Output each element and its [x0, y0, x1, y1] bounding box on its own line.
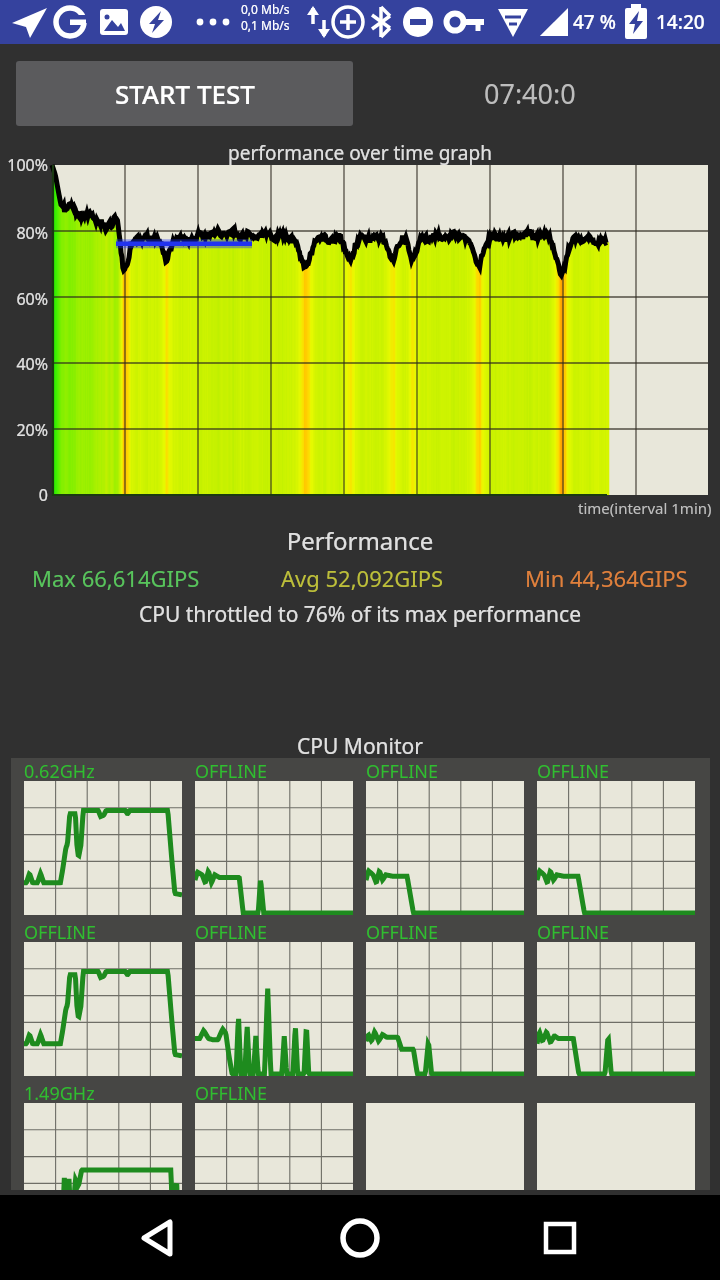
staticText: Performance: [0, 524, 720, 557]
staticText: OFFLINE: [537, 920, 609, 945]
staticText: 40%: [0, 353, 48, 375]
staticText: Min 44,364GIPS: [525, 563, 688, 593]
staticText: OFFLINE: [366, 920, 438, 945]
button[interactable]: START TEST: [16, 61, 353, 126]
staticText: CPU Monitor: [0, 732, 720, 761]
staticText: 100%: [0, 154, 48, 176]
staticText: performance over time graph: [0, 140, 720, 166]
staticText: 14:20: [656, 9, 705, 35]
staticText: 0: [0, 484, 48, 506]
staticText: OFFLINE: [537, 759, 609, 784]
staticText: 0,1 Mb/s: [241, 17, 290, 33]
staticText: Avg 52,092GIPS: [281, 563, 444, 593]
staticText: OFFLINE: [195, 759, 267, 784]
staticText: START TEST: [115, 76, 255, 111]
button[interactable]: Back: [118, 1198, 198, 1278]
staticText: CPU throttled to 76% of its max performa…: [0, 600, 720, 629]
staticText: 60%: [0, 288, 48, 310]
staticText: 20%: [0, 419, 48, 441]
staticText: 80%: [0, 222, 48, 244]
staticText: 07:40:0: [484, 75, 576, 112]
button[interactable]: Home: [320, 1198, 400, 1278]
staticText: OFFLINE: [195, 920, 267, 945]
staticText: OFFLINE: [366, 759, 438, 784]
button[interactable]: Recents: [520, 1198, 600, 1278]
staticText: OFFLINE: [195, 1081, 267, 1106]
staticText: 0.62GHz: [24, 759, 95, 784]
staticText: 1.49GHz: [24, 1081, 95, 1106]
staticText: OFFLINE: [24, 920, 96, 945]
staticText: Max 66,614GIPS: [32, 563, 200, 593]
staticText: 47 %: [573, 9, 616, 35]
staticText: time(interval 1min): [578, 498, 712, 518]
staticText: 0,0 Mb/s: [241, 1, 290, 17]
